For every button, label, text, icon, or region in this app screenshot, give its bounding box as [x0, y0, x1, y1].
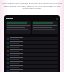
button[interactable]	[6, 21, 31, 34]
button[interactable]	[6, 37, 58, 40]
button[interactable]	[6, 65, 58, 68]
button[interactable]	[6, 49, 58, 52]
staticText: With support for multiple accounts and s…	[2, 2, 62, 9]
button[interactable]	[6, 57, 58, 60]
button[interactable]: Profile	[6, 17, 58, 20]
button[interactable]	[32, 21, 58, 34]
button[interactable]	[6, 61, 58, 64]
button[interactable]	[6, 69, 58, 72]
button[interactable]	[6, 45, 58, 48]
button[interactable]	[6, 41, 58, 44]
button[interactable]	[6, 53, 58, 56]
